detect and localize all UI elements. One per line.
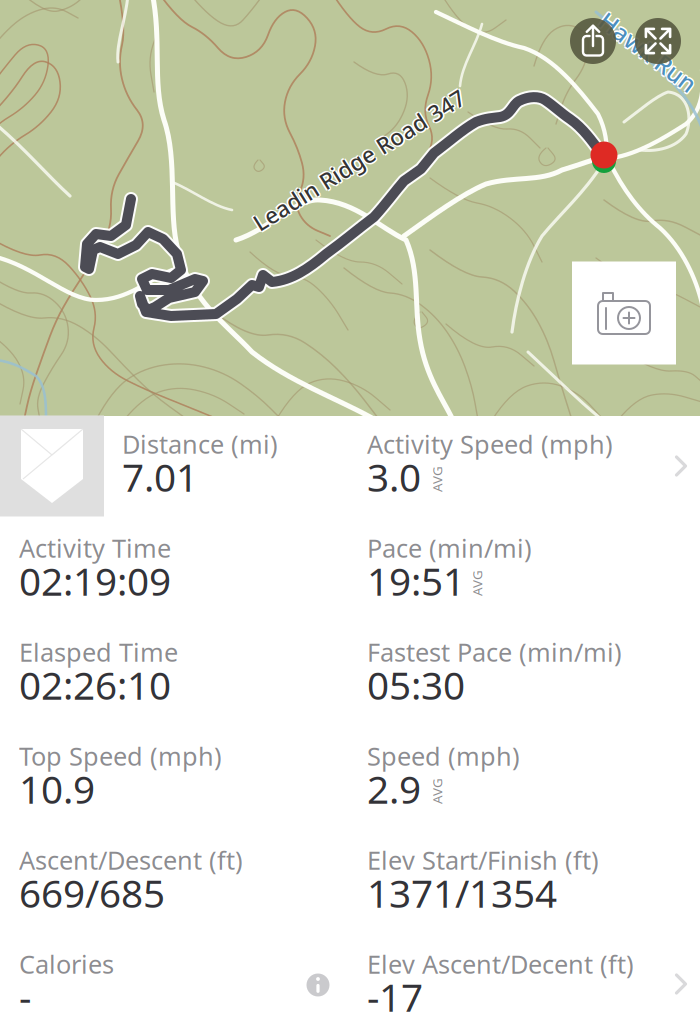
staticText: 02:19:09: [19, 555, 171, 606]
staticText: 3.0: [367, 451, 421, 502]
staticText: 02:26:10: [19, 659, 171, 710]
staticText: Leadin Ridge Road 347: [235, 144, 480, 174]
button[interactable]: Share: [570, 18, 616, 64]
staticText: Hawk Run: [590, 38, 700, 70]
staticText: 19:51: [367, 555, 465, 606]
staticText: 669/685: [19, 867, 165, 918]
staticText: -: [19, 971, 31, 1022]
staticText: 7.01: [122, 451, 198, 502]
staticText: Leadin Ridge Road 347: [236, 145, 481, 175]
button[interactable]: Pace (min/mi): [367, 533, 687, 617]
staticText: Hawk Run: [592, 37, 700, 69]
button[interactable]: Fastest Pace (min/mi): [367, 637, 687, 721]
button[interactable]: Speed (mph): [367, 741, 687, 825]
staticText: Distance (mi): [122, 427, 278, 461]
staticText: AVG: [424, 782, 450, 800]
staticText: Hawk Run: [589, 35, 700, 67]
staticText: Calories: [19, 947, 114, 981]
button[interactable]: Ascent/Descent (ft): [19, 845, 339, 929]
staticText: Leadin Ridge Road 347: [238, 145, 483, 175]
staticText: Pace (min/mi): [367, 531, 532, 565]
staticText: AVG: [464, 574, 490, 592]
button[interactable]: Elev Start/Finish (ft): [367, 845, 687, 929]
staticText: Elev Start/Finish (ft): [367, 843, 599, 877]
staticText: 2.9: [367, 763, 421, 814]
staticText: Leadin Ridge Road 347: [236, 146, 481, 177]
button[interactable]: Expand map: [635, 18, 681, 64]
staticText: AVG: [424, 470, 450, 488]
button[interactable]: Activity Time: [19, 533, 339, 617]
staticText: Leadin Ridge Road 347: [236, 143, 481, 173]
staticText: Elev Ascent/Decent (ft): [367, 947, 634, 981]
staticText: Ascent/Descent (ft): [19, 843, 243, 877]
staticText: Hawk Run: [590, 36, 700, 68]
staticText: Hawk Run: [589, 36, 700, 68]
staticText: Hawk Run: [590, 34, 700, 66]
staticText: Activity Time: [19, 531, 171, 565]
staticText: Speed (mph): [367, 739, 520, 773]
staticText: Leadin Ridge Road 347: [238, 146, 483, 176]
button[interactable]: Activity Speed (mph): [367, 429, 687, 513]
staticText: Fastest Pace (min/mi): [367, 635, 622, 669]
button[interactable]: Add photo: [572, 261, 676, 364]
staticText: Top Speed (mph): [19, 739, 222, 773]
staticText: 1371/1354: [367, 867, 557, 918]
staticText: -17: [367, 971, 423, 1022]
button[interactable]: Calories: [19, 949, 339, 1023]
staticText: Activity Speed (mph): [367, 427, 613, 461]
staticText: Elasped Time: [19, 635, 178, 669]
button[interactable]: Top Speed (mph): [19, 741, 339, 825]
staticText: Leadin Ridge Road 347: [235, 145, 480, 175]
button[interactable]: Elasped Time: [19, 637, 339, 721]
button[interactable]: Distance (mi): [122, 429, 442, 513]
button[interactable]: Elev Ascent/Decent (ft): [367, 949, 687, 1023]
staticText: Hawk Run: [592, 36, 700, 68]
staticText: 10.9: [19, 763, 95, 814]
staticText: 05:30: [367, 659, 465, 710]
